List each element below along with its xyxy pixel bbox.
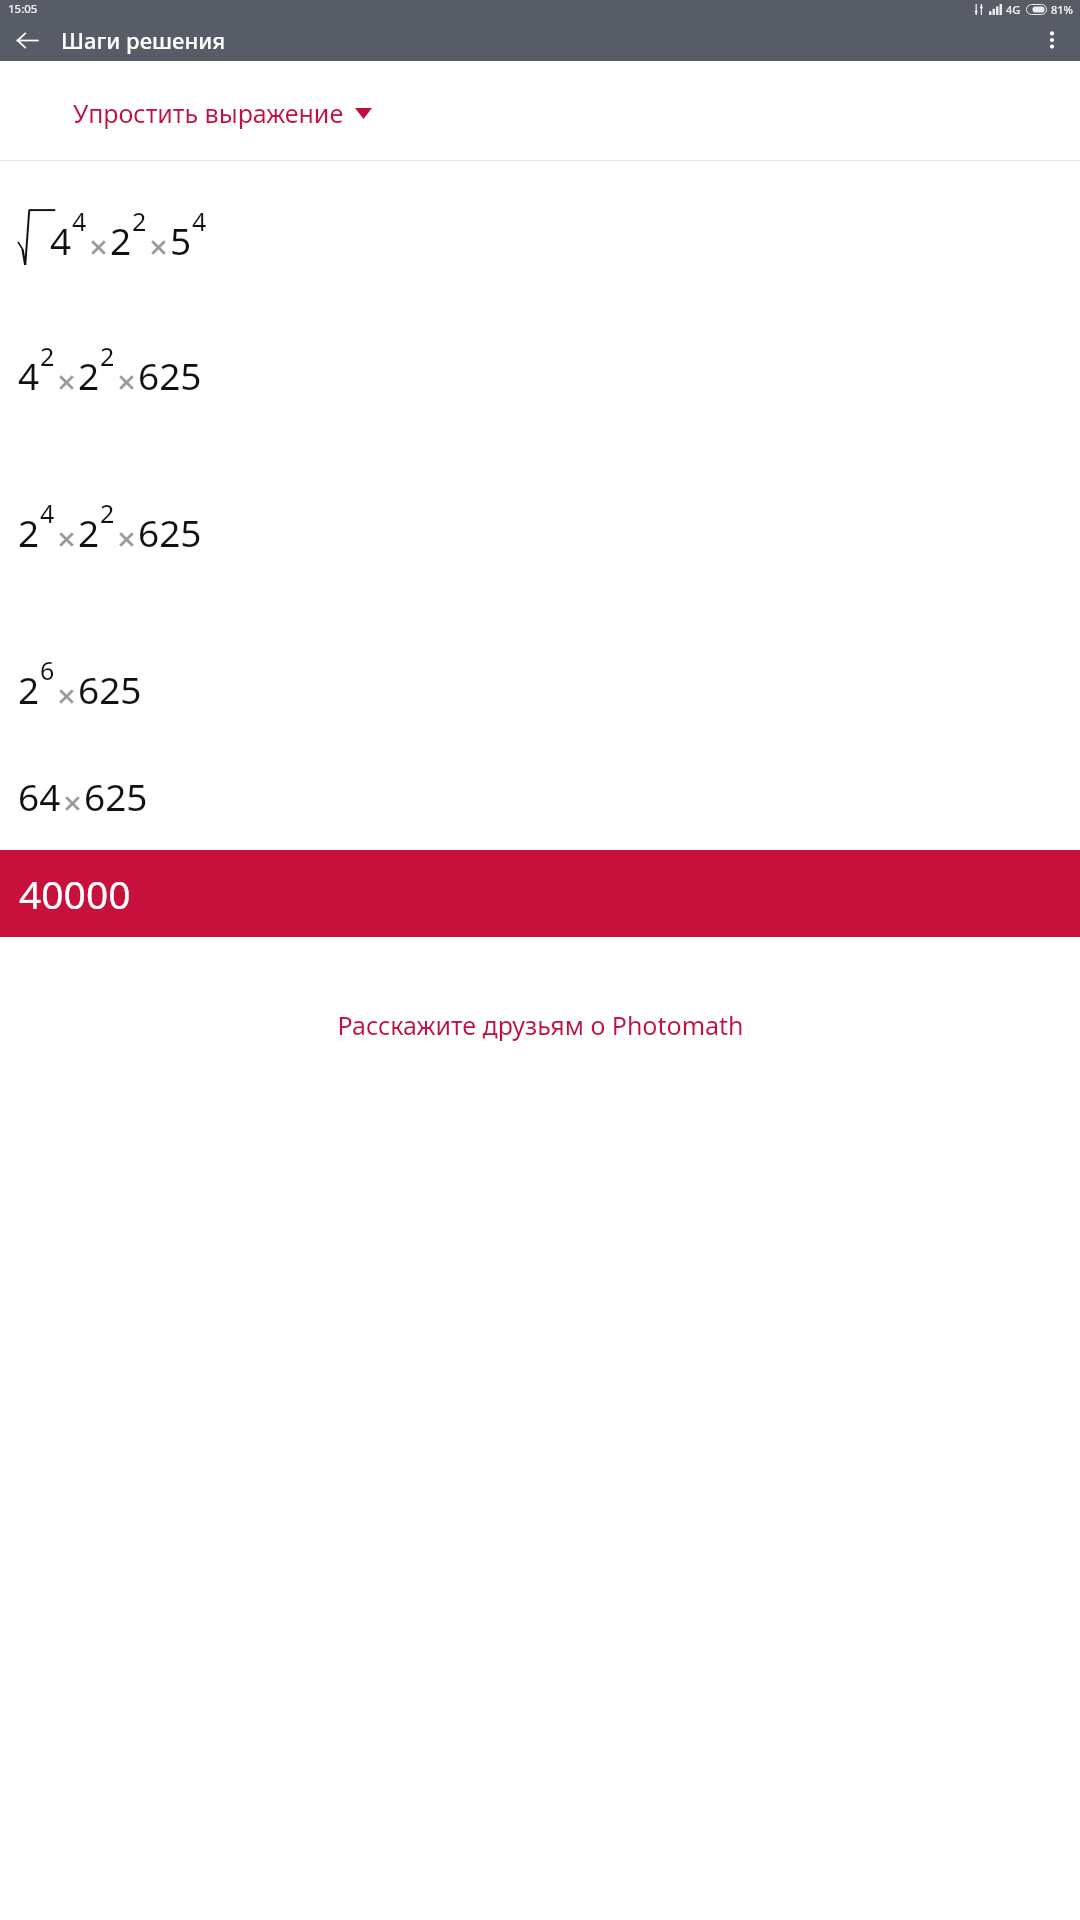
staticText: 40000 [19,867,131,920]
staticText: 625 [138,507,202,557]
button[interactable]: 64 [0,771,1080,821]
staticText: Упростить выражение [73,96,344,130]
staticText: 4 [18,350,40,400]
button[interactable]: 4 [0,338,1080,400]
button[interactable]: 4 [0,180,1080,272]
staticText: 2 [78,507,100,557]
button[interactable]: 40000 [0,850,1080,937]
staticText: 2 [132,204,147,238]
staticText: 5 [170,215,192,265]
button[interactable]: 2 [0,495,1080,557]
staticText: 4 [192,204,207,238]
staticText: 2 [100,496,115,530]
staticText: 6 [40,653,55,687]
staticText: 2 [18,664,40,714]
staticText: 625 [138,350,202,400]
button[interactable]: More options [1032,20,1072,60]
button[interactable]: Расскажите друзьям о Photomath [0,1001,1080,1049]
staticText: 4 [50,215,72,265]
staticText: 4 [40,496,55,530]
button[interactable]: Упростить выражение [0,96,1080,130]
staticText: 2 [110,215,132,265]
staticText: 625 [84,771,148,821]
staticText: Шаги решения [61,25,226,55]
button[interactable]: 2 [0,652,1080,714]
staticText: 2 [100,339,115,373]
staticText: 625 [78,664,142,714]
staticText: 2 [40,339,55,373]
staticText: Расскажите друзьям о Photomath [337,1008,744,1042]
staticText: 81% [1051,2,1073,17]
staticText: 4G [1006,2,1021,17]
staticText: 2 [78,350,100,400]
staticText: 2 [18,507,40,557]
staticText: 15:05 [8,1,38,17]
button[interactable]: Back [7,20,47,60]
staticText: 64 [18,771,61,821]
staticText: 4 [72,204,87,238]
